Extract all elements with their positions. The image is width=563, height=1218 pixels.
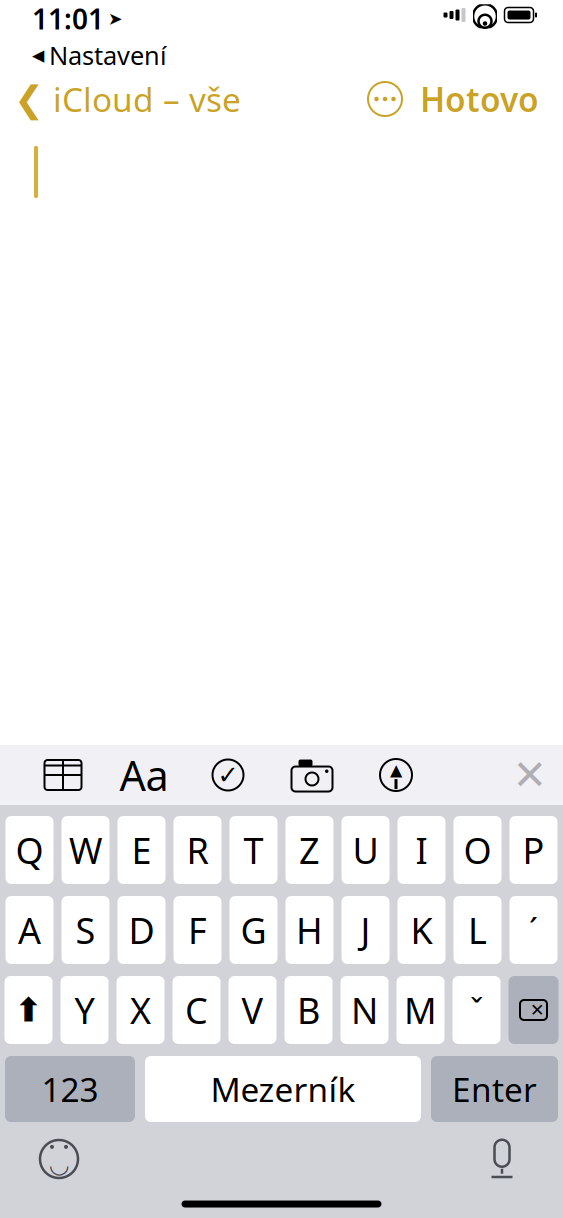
button[interactable]: ˇ	[452, 976, 500, 1044]
button[interactable]: T	[229, 816, 277, 884]
staticText: ❮	[14, 79, 44, 119]
button[interactable]: F	[173, 896, 221, 964]
button[interactable]: Zavřít klávesnici	[497, 746, 563, 804]
button[interactable]: J	[341, 896, 389, 964]
staticText: G	[240, 906, 266, 954]
button[interactable]: ⬆	[4, 976, 52, 1044]
button[interactable]: Emotikony	[32, 1132, 86, 1186]
button[interactable]: H	[285, 896, 333, 964]
button[interactable]: O	[453, 816, 501, 884]
staticText: ˇ	[470, 989, 483, 1031]
staticText: N	[351, 986, 378, 1034]
button[interactable]: Q	[5, 816, 53, 884]
button[interactable]: ◀	[32, 38, 167, 72]
button[interactable]: G	[229, 896, 277, 964]
button[interactable]: B	[284, 976, 332, 1044]
button[interactable]: I	[397, 816, 445, 884]
button[interactable]: W	[61, 816, 109, 884]
staticText: ✕	[530, 1000, 545, 1020]
staticText: ✓	[217, 761, 238, 789]
button[interactable]: K	[397, 896, 445, 964]
button[interactable]: Mezerník	[145, 1056, 421, 1122]
button[interactable]: Diktování	[479, 1134, 525, 1184]
staticText: Nastavení	[49, 38, 167, 72]
staticText: A	[18, 906, 41, 954]
button[interactable]: Formát	[102, 746, 186, 804]
button[interactable]: Kresba	[354, 746, 438, 804]
button[interactable]: Kamera	[270, 746, 354, 804]
button[interactable]: Y	[60, 976, 108, 1044]
button[interactable]: Hotovo	[405, 70, 554, 128]
staticText: ✕	[512, 751, 547, 798]
staticText: K	[410, 906, 432, 954]
staticText: F	[188, 906, 207, 954]
button[interactable]: S	[61, 896, 109, 964]
button[interactable]: R	[173, 816, 221, 884]
button[interactable]: E	[117, 816, 165, 884]
staticText: ◡	[50, 1151, 68, 1178]
staticText: ´	[529, 909, 538, 951]
staticText: X	[130, 986, 151, 1034]
staticText: S	[75, 906, 95, 954]
button[interactable]: Smazat	[508, 976, 558, 1044]
staticText: J	[360, 906, 370, 954]
button[interactable]: V	[228, 976, 276, 1044]
staticText: B	[297, 986, 320, 1034]
staticText: C	[185, 986, 208, 1034]
staticText: Q	[15, 826, 43, 874]
staticText: E	[131, 826, 151, 874]
staticText: 123	[41, 1067, 98, 1111]
staticText: ▲	[390, 761, 402, 779]
staticText: V	[241, 986, 263, 1034]
staticText: U	[352, 826, 378, 874]
staticText: Z	[299, 826, 320, 874]
button[interactable]: C	[172, 976, 220, 1044]
button[interactable]: 123	[5, 1056, 135, 1122]
button[interactable]: M	[396, 976, 444, 1044]
staticText: P	[522, 826, 544, 874]
staticText: iCloud – vše	[53, 77, 241, 121]
staticText: Aa	[119, 748, 168, 802]
staticText: R	[186, 826, 208, 874]
button[interactable]: L	[453, 896, 501, 964]
button[interactable]: ´	[509, 896, 557, 964]
button[interactable]: Zaškrtávací seznam	[186, 746, 270, 804]
staticText: Hotovo	[420, 77, 539, 121]
staticText: Enter	[452, 1067, 537, 1111]
staticText: Mezerník	[210, 1067, 355, 1111]
staticText: M	[404, 986, 437, 1034]
staticText: ⬆	[14, 991, 42, 1029]
button[interactable]: D	[117, 896, 165, 964]
staticText: W	[69, 826, 102, 874]
button[interactable]: Enter	[431, 1056, 558, 1122]
button[interactable]: X	[116, 976, 164, 1044]
button[interactable]: P	[509, 816, 557, 884]
button[interactable]: A	[5, 896, 53, 964]
staticText: O	[463, 826, 491, 874]
staticText: Y	[74, 986, 94, 1034]
staticText: H	[296, 906, 323, 954]
staticText: L	[468, 906, 487, 954]
button[interactable]: ❮	[0, 70, 241, 128]
staticText: ➤	[108, 9, 123, 28]
staticText: ◀	[32, 46, 44, 64]
button[interactable]: Z	[285, 816, 333, 884]
button[interactable]: U	[341, 816, 389, 884]
button[interactable]: Další možnosti	[365, 79, 405, 119]
button[interactable]: N	[340, 976, 388, 1044]
staticText: 11:01	[32, 0, 104, 37]
staticText: D	[128, 906, 154, 954]
button[interactable]: Tabulka	[24, 746, 102, 804]
staticText: I	[415, 826, 427, 874]
staticText: T	[243, 826, 263, 874]
